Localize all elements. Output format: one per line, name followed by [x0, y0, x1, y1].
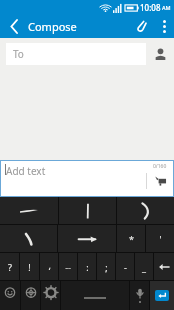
staticText: 10:08 — [140, 2, 161, 13]
button[interactable]: ... — [59, 253, 77, 280]
button[interactable]: _ — [135, 253, 153, 280]
button[interactable]: Stroke 1 — [59, 197, 116, 224]
staticText: ! — [28, 261, 31, 273]
button[interactable]: Add text — [0, 160, 146, 197]
button[interactable]: Backspace — [154, 253, 174, 280]
button[interactable]: More options — [154, 14, 174, 38]
staticText: Add text — [6, 164, 46, 178]
button[interactable]: * — [117, 225, 145, 252]
button[interactable]: : — [78, 253, 96, 280]
staticText: ، — [48, 262, 51, 272]
button[interactable]: Send — [147, 173, 174, 189]
button[interactable]: Attach — [128, 14, 154, 38]
button[interactable]: ! — [20, 253, 39, 280]
button[interactable]: Settings — [41, 281, 60, 310]
button[interactable]: Stroke 4 — [58, 225, 116, 252]
button[interactable]: Stroke 0 — [0, 197, 58, 224]
button[interactable]: Symbols — [0, 281, 20, 310]
staticText: _ — [142, 261, 146, 273]
button[interactable]: Enter — [150, 281, 174, 310]
button[interactable]: ' — [146, 225, 174, 252]
button[interactable]: Back — [0, 14, 28, 38]
staticText: : — [86, 261, 89, 273]
button[interactable]: ، — [40, 253, 58, 280]
button[interactable]: - — [116, 253, 134, 280]
button[interactable]: Language — [21, 281, 40, 310]
staticText: Compose — [28, 19, 77, 34]
button[interactable]: Space — [61, 281, 129, 310]
staticText: ? — [8, 261, 12, 273]
button[interactable]: Stroke 3 — [0, 225, 57, 252]
staticText: ... — [65, 262, 71, 272]
button[interactable]: ; — [97, 253, 115, 280]
staticText: AM — [162, 4, 171, 11]
staticText: ; — [105, 261, 108, 273]
staticText: To — [13, 47, 24, 61]
button[interactable]: Stroke 2 — [117, 197, 174, 224]
staticText: - — [124, 261, 127, 273]
staticText: ' — [159, 233, 162, 245]
button[interactable]: To — [6, 43, 146, 65]
staticText: * — [129, 233, 134, 245]
button[interactable]: ? — [0, 253, 19, 280]
staticText: 0/160 — [153, 163, 167, 170]
button[interactable]: Voice input — [130, 281, 149, 310]
button[interactable]: Pick contact — [146, 43, 174, 65]
